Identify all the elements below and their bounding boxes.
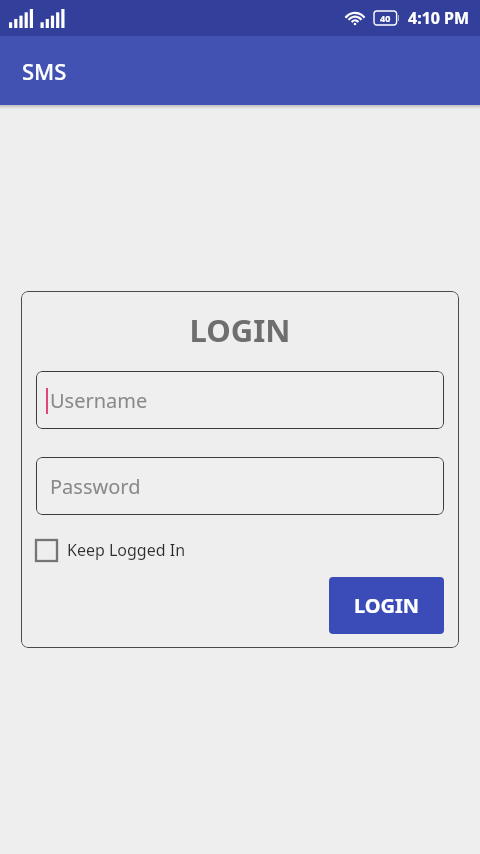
staticText: 40 <box>380 12 391 24</box>
button[interactable]: LOGIN <box>329 577 444 634</box>
staticText: LOGIN <box>354 592 420 619</box>
staticText: Keep Logged In <box>67 539 186 561</box>
staticText: Password <box>50 473 141 500</box>
staticText: Username <box>50 387 148 414</box>
staticText: 4:10 PM <box>408 7 470 29</box>
button[interactable]: Keep Logged In <box>36 537 186 563</box>
button[interactable]: Username <box>36 371 444 429</box>
staticText: LOGIN <box>36 309 444 351</box>
button[interactable]: Password <box>36 457 444 515</box>
staticText: SMS <box>22 56 67 86</box>
